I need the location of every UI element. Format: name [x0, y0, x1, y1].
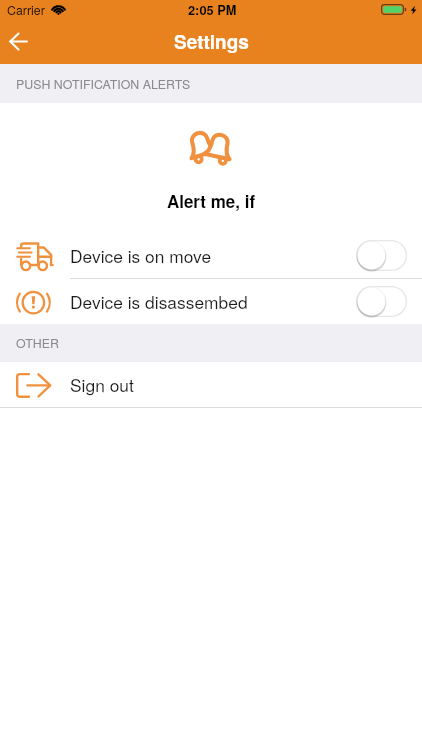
- staticText: 2:05 PM: [188, 1, 237, 19]
- button[interactable]: Device is on move: [0, 233, 422, 278]
- staticText: Carrier: [7, 1, 45, 19]
- staticText: Device is on move: [70, 243, 212, 268]
- staticText: Alert me, if: [0, 189, 422, 213]
- staticText: OTHER: [16, 334, 59, 352]
- staticText: Device is disassembed: [70, 289, 248, 314]
- staticText: Settings: [174, 28, 249, 55]
- staticText: Sign out: [70, 372, 134, 397]
- button[interactable]: Back: [0, 23, 40, 63]
- staticText: PUSH NOTIFICATION ALERTS: [16, 75, 191, 93]
- button[interactable]: Device is disassembed: [0, 279, 422, 324]
- button[interactable]: Sign out: [0, 362, 422, 407]
